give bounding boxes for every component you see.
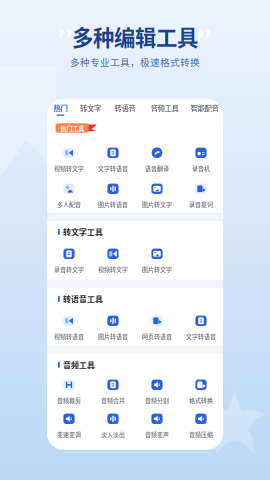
staticText: 网页转语音	[142, 332, 172, 340]
staticText: 变速变调	[57, 430, 81, 438]
staticText: 图片转语音	[98, 200, 128, 208]
button[interactable]: 音频合并	[91, 379, 135, 405]
staticText: 录音机	[192, 164, 210, 172]
button[interactable]: 文字转语音	[91, 147, 135, 173]
button[interactable]: 音频变声	[135, 413, 179, 439]
button[interactable]: 变速变调	[47, 413, 91, 439]
button[interactable]: 多人配音	[47, 183, 91, 209]
button[interactable]: 音频裁剪	[47, 379, 91, 405]
button[interactable]: 淡入淡出	[91, 413, 135, 439]
staticText: 热门工具	[60, 124, 84, 132]
staticText: 智能配音	[190, 103, 218, 114]
staticText: 视频转文字	[98, 265, 128, 273]
staticText: 图片转文字	[142, 200, 172, 208]
button[interactable]: 音频分割	[135, 379, 179, 405]
button[interactable]: 转语音	[107, 103, 143, 116]
staticText: 视频转语音	[54, 332, 84, 340]
button[interactable]: 视频转文字	[47, 147, 91, 173]
staticText: 音频压缩	[189, 430, 213, 438]
button[interactable]: 视频转语音	[47, 315, 91, 341]
button[interactable]: 录音机	[179, 147, 223, 173]
staticText: 录音转文字	[54, 265, 84, 273]
button[interactable]: 图片转语音	[91, 183, 135, 209]
staticText: 多种编辑工具	[72, 21, 198, 52]
staticText: 音频裁剪	[57, 396, 81, 404]
staticText: 转语音	[114, 103, 135, 114]
button[interactable]: 语音翻译	[135, 147, 179, 173]
staticText: 转文字工具	[63, 226, 103, 238]
staticText: 热门	[53, 103, 67, 114]
staticText: 多种专业工具，极速格式转换	[70, 55, 200, 69]
staticText: 图片转语音	[98, 332, 128, 340]
staticText: 转文字	[80, 103, 101, 114]
staticText: 视频转文字	[54, 164, 84, 172]
staticText: 淡入淡出	[101, 430, 125, 438]
button[interactable]: 图片转文字	[135, 183, 179, 209]
button[interactable]: 录音转文字	[47, 248, 91, 274]
staticText: 转语音工具	[63, 293, 103, 305]
staticText: 音频工具	[150, 103, 178, 114]
button[interactable]: 网页转语音	[135, 315, 179, 341]
button[interactable]: 音频工具	[143, 103, 186, 116]
staticText: 图片转文字	[142, 265, 172, 273]
staticText: 格式转换	[189, 396, 213, 404]
staticText: 文字转语音	[186, 332, 216, 340]
button[interactable]: 智能配音	[186, 103, 223, 116]
button[interactable]: 文字转语音	[179, 315, 223, 341]
button[interactable]: 格式转换	[179, 379, 223, 405]
button[interactable]: 音频压缩	[179, 413, 223, 439]
button[interactable]: 视频转文字	[91, 248, 135, 274]
staticText: 音频分割	[145, 396, 169, 404]
button[interactable]: 热门	[47, 103, 74, 116]
staticText: 音频变声	[145, 430, 169, 438]
staticText: 多人配音	[57, 200, 81, 208]
button[interactable]: 录音提词	[179, 183, 223, 209]
staticText: 录音提词	[189, 200, 213, 208]
staticText: 文字转语音	[98, 164, 128, 172]
button[interactable]: 转文字	[74, 103, 107, 116]
staticText: 语音翻译	[145, 164, 169, 172]
staticText: 音频工具	[63, 359, 95, 371]
button[interactable]: 图片转语音	[91, 315, 135, 341]
button[interactable]: 图片转文字	[135, 248, 179, 274]
staticText: 音频合并	[101, 396, 125, 404]
